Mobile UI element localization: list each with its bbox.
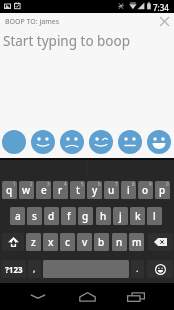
button[interactable]: ,	[28, 260, 41, 278]
staticText: d	[48, 209, 55, 223]
staticText: h	[100, 209, 107, 223]
button[interactable]: s	[27, 207, 42, 225]
button[interactable]: i	[121, 181, 136, 199]
staticText: .	[136, 262, 139, 274]
staticText: ?123	[5, 264, 23, 275]
staticText: g	[82, 209, 89, 223]
button[interactable]: Recent apps	[118, 283, 154, 310]
button[interactable]: Mood 0	[2, 130, 26, 154]
button[interactable]: k	[130, 207, 145, 225]
staticText: z	[31, 235, 36, 249]
button[interactable]: Close	[155, 12, 174, 31]
button[interactable]: Shift	[2, 233, 24, 251]
staticText: s	[32, 209, 37, 223]
staticText: b	[98, 235, 105, 249]
staticText: ,	[33, 262, 36, 274]
staticText: x	[48, 235, 54, 249]
button[interactable]: d	[44, 207, 59, 225]
button[interactable]: Mood 3	[89, 130, 113, 154]
staticText: 2	[30, 181, 33, 187]
staticText: 1	[13, 181, 16, 187]
button[interactable]: m	[129, 233, 144, 251]
button[interactable]: Mood 4	[118, 130, 142, 154]
staticText: l	[153, 209, 156, 223]
staticText: a	[15, 209, 21, 223]
staticText: n	[116, 235, 123, 249]
button[interactable]: Home	[69, 283, 105, 310]
button[interactable]: j	[113, 207, 128, 225]
button[interactable]: y	[87, 181, 102, 199]
button[interactable]: e	[36, 181, 51, 199]
staticText: 4	[64, 181, 67, 187]
staticText: BOOP TO: james	[5, 17, 60, 27]
button[interactable]: n	[112, 233, 127, 251]
staticText: Start typing to boop	[3, 32, 131, 50]
staticText: q	[6, 183, 13, 197]
button[interactable]: Emoji keyboard	[147, 260, 173, 278]
button[interactable]: Back	[20, 283, 56, 310]
button[interactable]: Backspace	[148, 233, 173, 251]
button[interactable]: z	[26, 233, 41, 251]
staticText: 3	[47, 181, 50, 187]
staticText: k	[135, 209, 141, 223]
button[interactable]: x	[43, 233, 58, 251]
staticText: p	[159, 183, 166, 197]
button[interactable]: q	[2, 181, 17, 199]
staticText: v	[82, 235, 88, 249]
staticText: 8	[132, 181, 135, 187]
button[interactable]: t	[70, 181, 85, 199]
staticText: u	[108, 183, 115, 197]
staticText: 5	[81, 181, 84, 187]
staticText: r	[58, 183, 63, 197]
button[interactable]: o	[138, 181, 153, 199]
staticText: f	[67, 209, 71, 223]
button[interactable]: b	[94, 233, 109, 251]
button[interactable]: u	[104, 181, 119, 199]
staticText: m	[132, 235, 142, 249]
staticText: t	[76, 183, 80, 197]
button[interactable]: l	[147, 207, 162, 225]
button[interactable]: r	[53, 181, 68, 199]
button[interactable]: w	[19, 181, 34, 199]
staticText: c	[65, 235, 70, 249]
staticText: w	[22, 183, 31, 197]
staticText: 7:34	[153, 2, 169, 13]
staticText: i	[127, 183, 130, 197]
button[interactable]: f	[61, 207, 76, 225]
button[interactable]: .	[131, 260, 144, 278]
button[interactable]: ?123	[1, 260, 26, 278]
staticText: 6	[98, 181, 101, 187]
button[interactable]: Mood 2	[60, 130, 84, 154]
staticText: 0	[166, 181, 169, 187]
staticText: e	[41, 183, 47, 197]
button[interactable]: h	[96, 207, 111, 225]
button[interactable]: c	[60, 233, 75, 251]
button[interactable]: p	[155, 181, 170, 199]
staticText: 7	[115, 181, 118, 187]
button[interactable]: a	[10, 207, 25, 225]
button[interactable]: g	[78, 207, 93, 225]
button[interactable]: Mood 5	[147, 130, 171, 154]
button[interactable]: v	[77, 233, 92, 251]
staticText: o	[142, 183, 149, 197]
staticText: j	[119, 209, 122, 223]
staticText: 9	[149, 181, 152, 187]
staticText: y	[92, 183, 98, 197]
button[interactable]: Mood 1	[31, 130, 55, 154]
